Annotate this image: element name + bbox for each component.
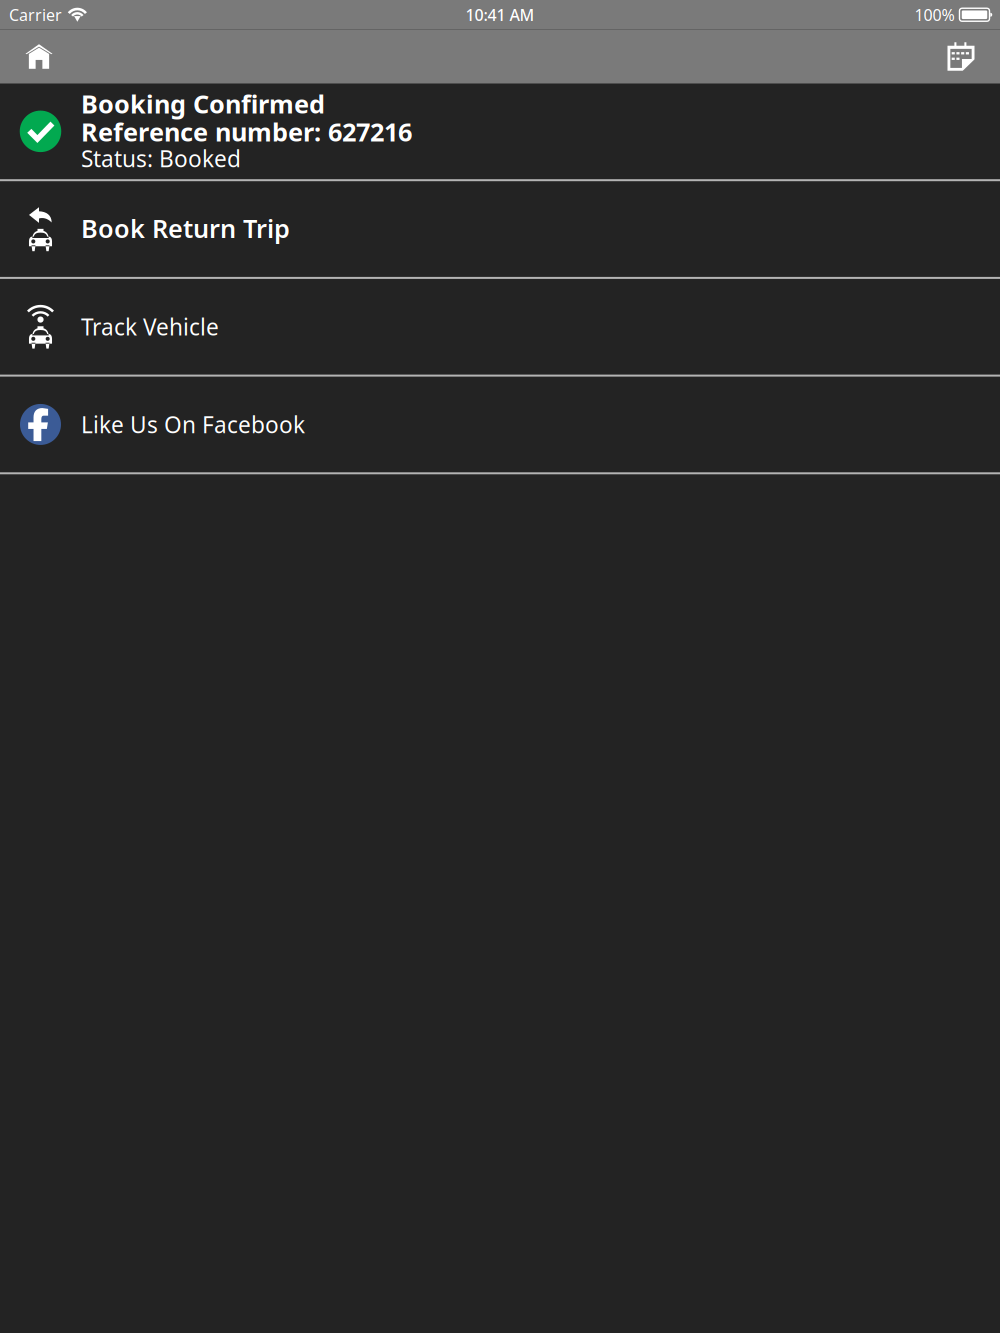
staticText: Booking Confirmed xyxy=(81,87,325,120)
staticText: Reference number: 627216 xyxy=(81,115,412,148)
staticText: Track Vehicle xyxy=(81,312,219,342)
staticText: Book Return Trip xyxy=(81,211,290,245)
button[interactable]: Home xyxy=(4,29,74,83)
staticText: 100% xyxy=(914,4,954,25)
button[interactable]: Track Vehicle xyxy=(0,279,1000,375)
staticText: 10:41 AM xyxy=(465,4,534,25)
staticText: Status: Booked xyxy=(81,143,241,174)
button[interactable]: Book Return Trip xyxy=(0,181,1000,277)
button[interactable]: Like Us On Facebook xyxy=(0,377,1000,472)
button[interactable]: Bookings xyxy=(926,29,996,83)
staticText: Like Us On Facebook xyxy=(81,409,305,439)
staticText: Carrier xyxy=(9,4,62,25)
